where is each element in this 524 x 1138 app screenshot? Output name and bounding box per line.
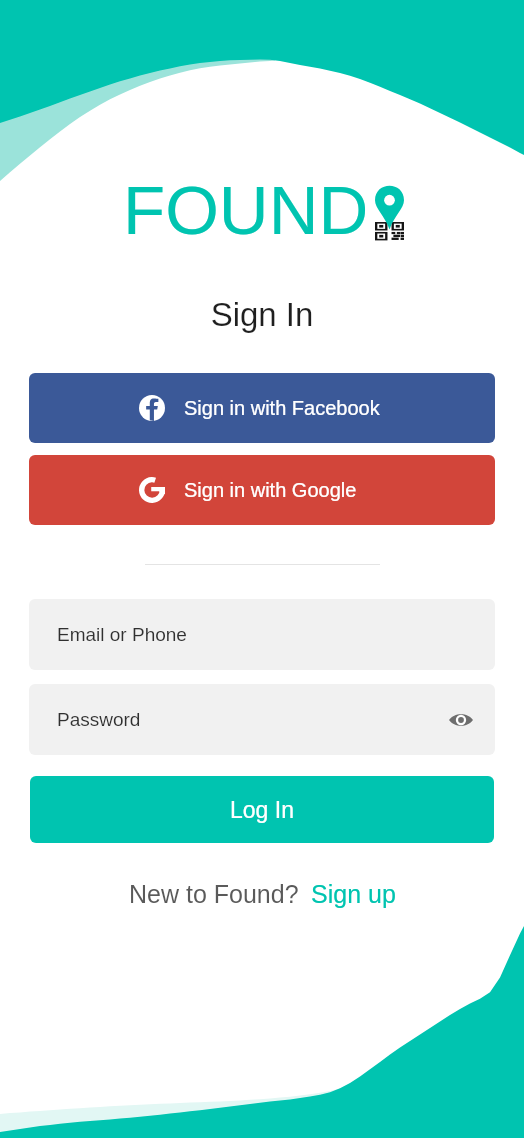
button[interactable]: Log In bbox=[30, 776, 494, 843]
button[interactable]: Sign up bbox=[311, 880, 396, 908]
button[interactable]: Password bbox=[29, 684, 495, 755]
button[interactable]: Sign in with Facebook bbox=[29, 373, 495, 443]
button[interactable]: Show password bbox=[442, 701, 480, 739]
staticText: Sign up bbox=[311, 880, 396, 908]
staticText: Email or Phone bbox=[57, 624, 187, 645]
staticText: Log In bbox=[230, 797, 294, 823]
staticText: FOUND bbox=[123, 172, 369, 249]
staticText: Password bbox=[57, 709, 141, 730]
button[interactable]: Sign in with Google bbox=[29, 455, 495, 525]
staticText: Sign in with Facebook bbox=[184, 397, 380, 419]
staticText: Sign in with Google bbox=[184, 479, 357, 501]
staticText: New to Found? bbox=[129, 880, 299, 908]
staticText: Sign In bbox=[0, 296, 524, 333]
button[interactable]: Email or Phone bbox=[29, 599, 495, 670]
